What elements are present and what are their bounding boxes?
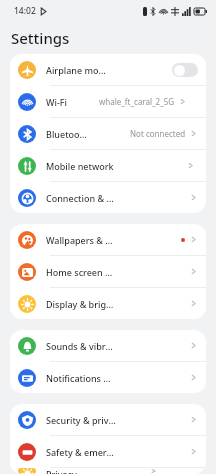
button[interactable]: Mobile network	[10, 150, 206, 181]
staticText: Mobile network	[46, 160, 114, 172]
staticText: Not connected	[130, 128, 186, 139]
staticText: Airplane mode	[46, 64, 109, 76]
button[interactable]: Home screen & Lock screen	[10, 256, 206, 287]
staticText: Security & privacy	[46, 414, 117, 426]
button[interactable]: Wallpapers & style	[10, 224, 206, 255]
other: Airplane mode toggle	[172, 63, 198, 77]
button[interactable]: Display & brightness	[10, 288, 206, 319]
button[interactable]: Sounds & vibration	[10, 330, 206, 361]
staticText: Home screen & Lock screen	[46, 266, 117, 278]
staticText: Safety & emergency	[46, 446, 117, 458]
button[interactable]: Notifications & Quick Settings	[10, 362, 206, 393]
button[interactable]: Safety & emergency	[10, 436, 206, 467]
button[interactable]: Security & privacy	[10, 404, 206, 435]
staticText: Sounds & vibration	[46, 340, 117, 352]
staticText: Display & brightness	[46, 298, 117, 310]
staticText: Wi-Fi	[46, 96, 67, 108]
button[interactable]: Airplane mode	[10, 54, 206, 85]
staticText: whale_ft_caral_2_5G	[99, 96, 175, 107]
staticText: Privacy	[46, 468, 77, 474]
staticText: 14:02	[14, 5, 36, 17]
button[interactable]: Connection & sharing	[10, 182, 206, 213]
staticText: Settings	[11, 28, 70, 48]
staticText: Connection & sharing	[46, 192, 117, 204]
button[interactable]: Wi-Fi	[10, 86, 206, 117]
staticText: Notifications & Quick Settings	[46, 372, 117, 384]
staticText: Bluetooth	[46, 128, 88, 140]
staticText: Wallpapers & style	[46, 234, 113, 246]
button[interactable]: Bluetooth	[10, 118, 206, 149]
button[interactable]: Privacy	[10, 468, 206, 474]
